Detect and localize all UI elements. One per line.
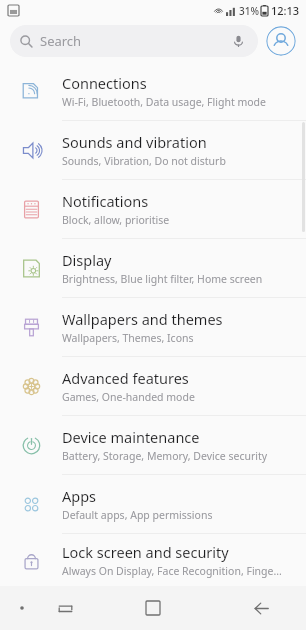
staticText: Notifications xyxy=(62,191,149,211)
staticText: Wallpapers, Themes, Icons xyxy=(62,331,194,345)
staticText: Games, One-handed mode xyxy=(62,390,195,404)
button[interactable]: Wallpapers and themes xyxy=(0,298,306,356)
button[interactable]: Display xyxy=(0,239,306,297)
staticText: Always On Display, Face Recognition, Fin… xyxy=(62,564,282,578)
staticText: Brightness, Blue light filter, Home scre… xyxy=(62,272,263,286)
button[interactable]: Account xyxy=(266,26,296,56)
button[interactable]: Apps xyxy=(0,475,306,533)
staticText: Display xyxy=(62,250,112,270)
staticText: Sounds, Vibration, Do not disturb xyxy=(62,154,226,168)
staticText: Wallpapers and themes xyxy=(62,309,223,329)
button[interactable]: Advanced features xyxy=(0,357,306,415)
button[interactable]: Device maintenance xyxy=(0,416,306,474)
staticText: Sounds and vibration xyxy=(62,132,207,152)
button[interactable]: Sounds and vibration xyxy=(0,121,306,179)
staticText: Advanced features xyxy=(62,368,189,388)
staticText: 12:13 xyxy=(271,3,300,18)
button[interactable]: Back xyxy=(246,593,276,623)
button[interactable]: Voice search xyxy=(228,31,248,51)
staticText: Battery, Storage, Memory, Device securit… xyxy=(62,449,268,463)
button[interactable]: Switch xyxy=(52,595,78,621)
button[interactable]: Recents xyxy=(138,593,168,623)
staticText: 31% xyxy=(239,4,259,18)
button[interactable]: Search xyxy=(10,25,258,57)
staticText: Wi-Fi, Bluetooth, Data usage, Flight mod… xyxy=(62,95,267,109)
staticText: Default apps, App permissions xyxy=(62,508,213,522)
staticText: Apps xyxy=(62,486,97,506)
staticText: Connections xyxy=(62,73,147,93)
staticText: Block, allow, prioritise xyxy=(62,213,170,227)
staticText: Device maintenance xyxy=(62,427,200,447)
button[interactable]: Lock screen and security xyxy=(0,534,306,586)
button[interactable]: Connections xyxy=(0,62,306,120)
button[interactable]: Notifications xyxy=(0,180,306,238)
staticText: Search xyxy=(40,32,82,50)
staticText: Lock screen and security xyxy=(62,542,229,562)
